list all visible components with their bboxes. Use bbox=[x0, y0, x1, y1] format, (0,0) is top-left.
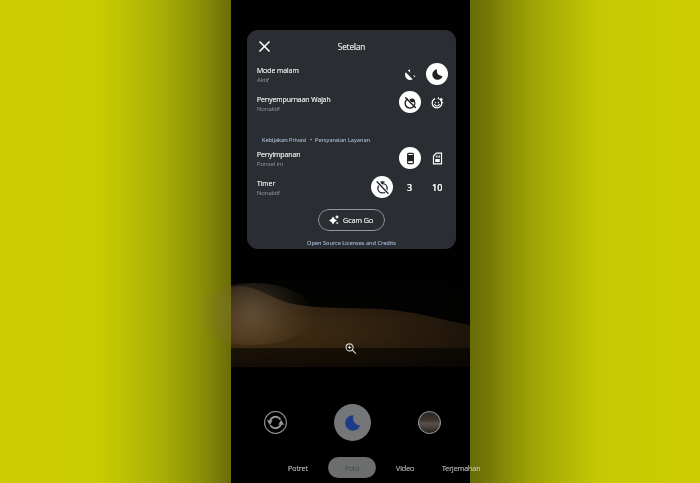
staticText: Potret bbox=[288, 463, 309, 473]
button[interactable]: Shutter bbox=[334, 404, 371, 441]
button[interactable]: Persyaratan Layanan bbox=[315, 136, 371, 144]
button[interactable]: 10 bbox=[426, 176, 448, 198]
button[interactable]: Option bbox=[426, 147, 448, 169]
button[interactable]: Potret bbox=[283, 457, 314, 478]
staticText: Mode malam bbox=[257, 66, 299, 76]
button[interactable]: Option bbox=[371, 176, 393, 198]
staticText: Terjemahan bbox=[442, 463, 481, 473]
button[interactable]: Video bbox=[391, 457, 420, 478]
staticText: 3 bbox=[407, 181, 413, 193]
button[interactable]: 3 bbox=[399, 176, 421, 198]
button[interactable]: Gcam Go bbox=[318, 209, 385, 231]
staticText: Nonaktif bbox=[257, 105, 280, 113]
button[interactable]: Last photo bbox=[418, 411, 441, 434]
button[interactable]: Kebijakan Privasi bbox=[262, 136, 307, 144]
button[interactable]: Switch camera bbox=[264, 411, 287, 434]
staticText: 10 bbox=[432, 181, 443, 193]
button[interactable]: Terjemahan bbox=[437, 457, 486, 478]
staticText: Foto bbox=[345, 463, 360, 473]
button[interactable]: Option bbox=[399, 147, 421, 169]
staticText: Setelan bbox=[247, 41, 456, 52]
staticText: • bbox=[307, 136, 315, 144]
button[interactable]: Option bbox=[399, 63, 421, 85]
button[interactable]: Option bbox=[426, 91, 448, 113]
staticText: Ponsel ini bbox=[257, 160, 284, 168]
staticText: Penyimpanan bbox=[257, 150, 301, 160]
staticText: Video bbox=[396, 463, 415, 473]
staticText: Gcam Go bbox=[343, 215, 374, 225]
button[interactable]: Open Source Licenses and Credits bbox=[247, 239, 456, 247]
button[interactable]: Zoom bbox=[345, 343, 356, 354]
button[interactable]: Option bbox=[426, 63, 448, 85]
button[interactable]: Foto bbox=[328, 457, 376, 478]
staticText: Timer bbox=[257, 179, 276, 189]
staticText: Nonaktif bbox=[257, 189, 280, 197]
button[interactable]: Close bbox=[253, 35, 276, 58]
staticText: Penyempurnaan Wajah bbox=[257, 95, 331, 105]
button[interactable]: Option bbox=[399, 91, 421, 113]
staticText: Aktif bbox=[257, 76, 269, 84]
